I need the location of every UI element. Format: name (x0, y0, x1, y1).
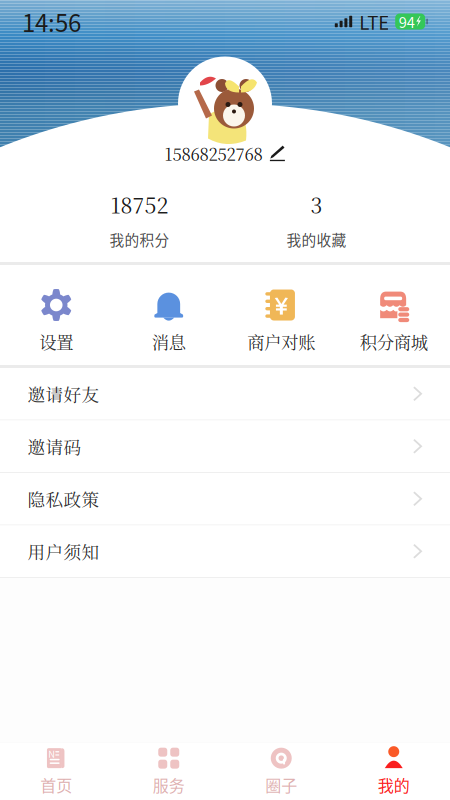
button[interactable]: 设置 (0, 265, 112, 365)
staticText: 3 (310, 189, 322, 220)
staticText: 18752 (110, 189, 168, 220)
staticText: N (48, 747, 55, 760)
button[interactable]: 消息 (112, 265, 225, 365)
staticText: 首页 (40, 773, 72, 796)
button[interactable]: 隐私政策 (0, 473, 450, 524)
staticText: 我的积分 (109, 229, 169, 250)
button[interactable]: 18752 (51, 175, 228, 262)
button[interactable]: 我的 (337, 742, 450, 800)
button[interactable]: 用户须知 (0, 525, 450, 577)
button[interactable]: 3 (228, 175, 405, 262)
button[interactable]: 15868252768 (164, 141, 285, 165)
staticText: 消息 (152, 329, 186, 354)
staticText: 邀请码 (27, 434, 81, 459)
button[interactable]: 邀请码 (0, 420, 450, 472)
button[interactable]: 邀请好友 (0, 368, 450, 419)
staticText: 圈子 (265, 773, 297, 796)
button[interactable]: 圈子 (225, 742, 337, 800)
staticText: 我的收藏 (286, 229, 346, 250)
staticText: 邀请好友 (27, 381, 99, 406)
staticText: 积分商城 (360, 329, 428, 354)
button[interactable]: 积分商城 (337, 265, 450, 365)
staticText: 用户须知 (27, 539, 99, 564)
staticText: 94 (399, 11, 415, 32)
button[interactable]: 商户对账 (225, 265, 337, 365)
staticText: 商户对账 (247, 329, 315, 354)
button[interactable]: N (0, 742, 112, 800)
staticText: 14:56 (22, 4, 81, 39)
button[interactable]: 服务 (112, 742, 225, 800)
staticText: 隐私政策 (27, 486, 99, 511)
staticText: LTE (359, 8, 389, 35)
staticText: 15868252768 (164, 141, 262, 165)
staticText: 服务 (153, 773, 185, 796)
staticText: 我的 (378, 773, 410, 796)
staticText: 设置 (39, 329, 73, 354)
